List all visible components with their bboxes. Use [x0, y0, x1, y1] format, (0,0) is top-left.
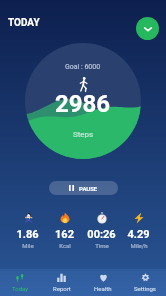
staticText: Steps — [73, 130, 94, 139]
button[interactable]: Report — [41, 269, 82, 296]
staticText: 162 — [55, 228, 74, 241]
staticText: Kcal — [59, 242, 71, 249]
staticText: Today — [12, 285, 29, 292]
button[interactable]: 162 — [46, 212, 83, 249]
button[interactable]: PAUSE — [49, 181, 118, 195]
button[interactable]: 1.86 — [9, 212, 46, 249]
staticText: Mile — [22, 242, 34, 249]
button[interactable]: 4.29 — [120, 212, 157, 249]
staticText: Time — [95, 242, 109, 249]
staticText: 00:26 — [87, 228, 116, 241]
button[interactable]: Today — [0, 269, 41, 296]
button[interactable]: Expand — [136, 17, 159, 40]
staticText: Health — [94, 285, 112, 292]
staticText: PAUSE — [79, 185, 98, 192]
button[interactable]: Settings — [124, 269, 166, 296]
staticText: TODAY — [8, 17, 40, 29]
staticText: 4.29 — [127, 228, 150, 241]
staticText: Goal : 6000 — [65, 63, 101, 71]
staticText: 2986 — [55, 90, 111, 118]
staticText: 1.86 — [16, 228, 39, 241]
staticText: Settings — [134, 285, 156, 292]
staticText: Mile/h — [130, 242, 148, 249]
staticText: Report — [53, 285, 71, 292]
button[interactable]: 00:26 — [83, 212, 120, 249]
button[interactable]: Health — [82, 269, 124, 296]
